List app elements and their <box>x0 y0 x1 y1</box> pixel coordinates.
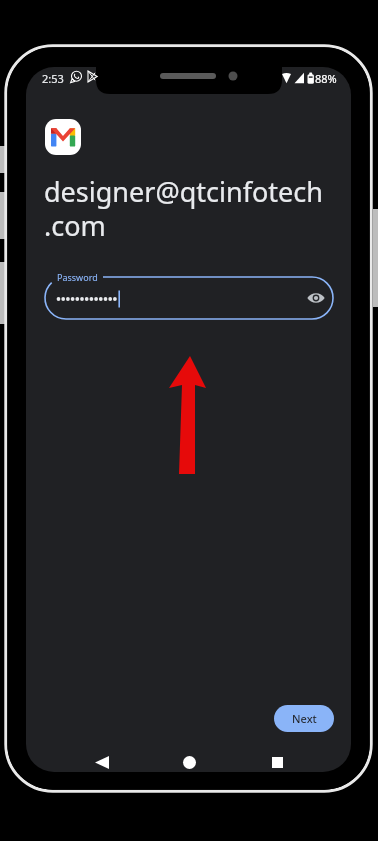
staticText: 88% <box>315 71 337 86</box>
button[interactable]: Password <box>45 277 333 319</box>
staticText: designer@qtcinfotech .com <box>44 173 323 244</box>
button[interactable]: Recent apps <box>260 745 294 772</box>
button[interactable]: Back <box>85 745 119 772</box>
staticText: 2:53 <box>42 71 64 86</box>
button[interactable]: Home <box>172 745 206 772</box>
staticText: Next <box>292 711 317 726</box>
button[interactable]: Next <box>274 705 334 732</box>
staticText: Password <box>57 271 98 283</box>
button[interactable]: Show password <box>303 285 328 310</box>
